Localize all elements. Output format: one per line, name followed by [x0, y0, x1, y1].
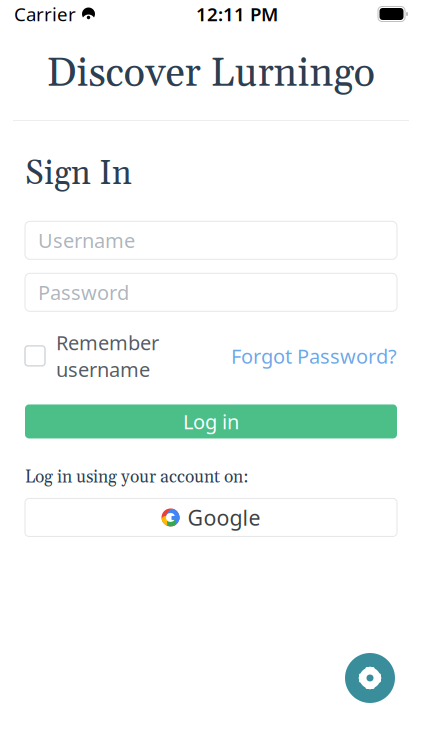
staticText: Log in	[183, 408, 239, 435]
staticText: 12:11 PM	[196, 2, 278, 26]
staticText: Discover Lurningo	[46, 49, 375, 99]
staticText: Username	[38, 227, 135, 254]
button[interactable]: Google	[25, 498, 397, 536]
staticText: Google	[187, 503, 260, 532]
button[interactable]: Settings	[345, 653, 395, 703]
staticText: Carrier	[14, 2, 76, 26]
button[interactable]: Remember username	[25, 329, 159, 382]
button[interactable]: Forgot Password?	[231, 343, 397, 369]
staticText: Forgot Password?	[231, 343, 397, 369]
staticText: Log in using your account on:	[25, 466, 248, 488]
button[interactable]: Log in	[25, 404, 397, 438]
staticText: Sign In	[25, 153, 132, 195]
staticText: Password	[38, 279, 129, 306]
button[interactable]: Username	[25, 221, 397, 259]
staticText: Remember username	[56, 329, 159, 382]
button[interactable]: Password	[25, 273, 397, 311]
